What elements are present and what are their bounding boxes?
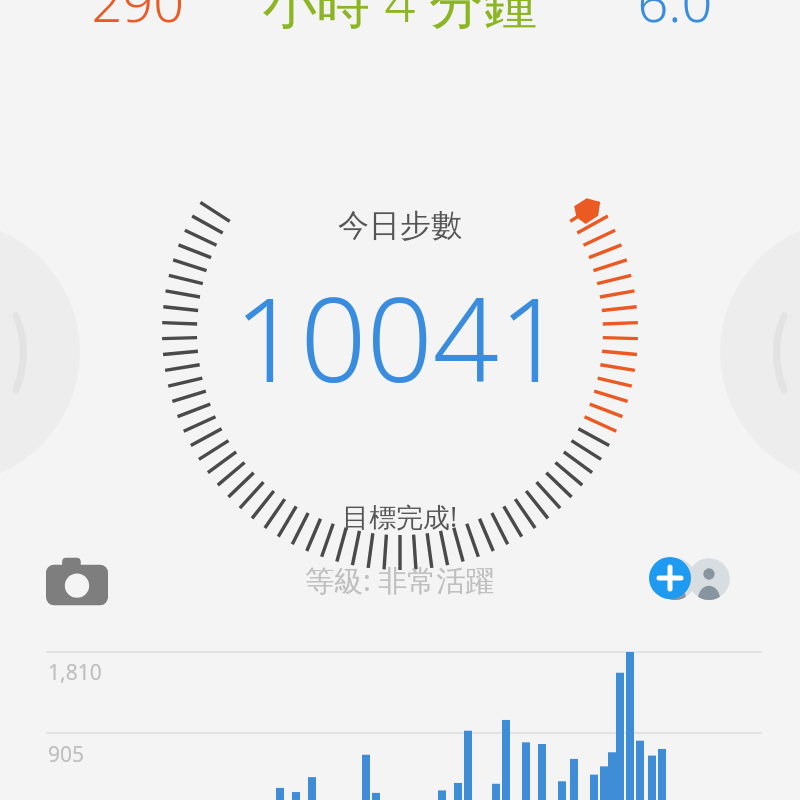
button[interactable]: Friend one [654,558,696,600]
button[interactable]: Friend two [688,558,730,600]
button[interactable]: Camera [46,552,108,610]
button[interactable]: Add friend [649,557,691,599]
